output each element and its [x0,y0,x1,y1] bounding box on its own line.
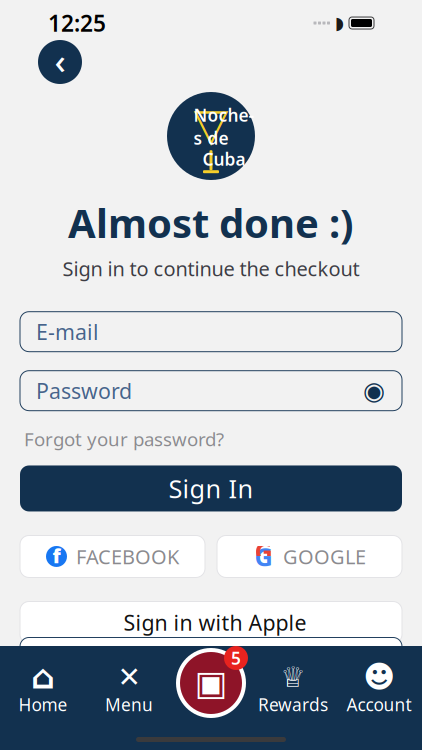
staticText: ✕ [117,661,140,693]
button[interactable]: E-mail [20,312,402,352]
staticText: Almost done :) [68,196,354,249]
staticText: Home [18,693,67,716]
staticText: Noches de [193,103,254,149]
staticText: ⌂ [31,658,55,696]
staticText: 5 [231,646,241,669]
staticText: G [254,540,272,573]
staticText: Menu [105,693,153,716]
staticText: Forgot your password? [24,427,224,451]
button[interactable] [20,637,402,679]
staticText: E-mail [36,317,99,346]
button[interactable]: Password [20,371,402,411]
button[interactable]: ⌂ [0,664,86,716]
staticText: Password [36,376,132,405]
staticText: ◉ [363,376,385,405]
staticText: ▽ [193,99,228,150]
staticText: ‹ [54,37,65,83]
staticText: Sign in to continue the checkout [62,255,359,282]
staticText: GOOGLE [283,543,366,570]
staticText: Cuba [202,147,245,170]
button[interactable]: Sign In [20,465,402,511]
staticText: ▣ [194,663,227,703]
staticText: Account [346,693,411,716]
button[interactable]: Forgot your password? [24,427,224,451]
staticText: ♕ [280,661,305,693]
button[interactable]: ✕ [86,664,172,716]
staticText: Rewards [258,693,328,716]
staticText: 12:25 [48,8,106,38]
button[interactable]: f [20,535,205,577]
staticText: f [52,542,60,569]
button[interactable]: ☻ [336,664,422,716]
staticText: Sign In [168,472,253,505]
staticText: ☻ [363,660,395,694]
staticText: G [254,534,272,568]
staticText: ◗ [335,13,344,33]
button[interactable]: G [217,535,402,577]
button[interactable]: ♕ [250,664,336,716]
staticText: FACEBOOK [76,543,179,570]
button[interactable]: Back [38,40,82,84]
button[interactable] [20,601,402,643]
staticText: Sign in with Apple [123,608,306,637]
button[interactable]: Cart, 5 items [174,646,248,720]
